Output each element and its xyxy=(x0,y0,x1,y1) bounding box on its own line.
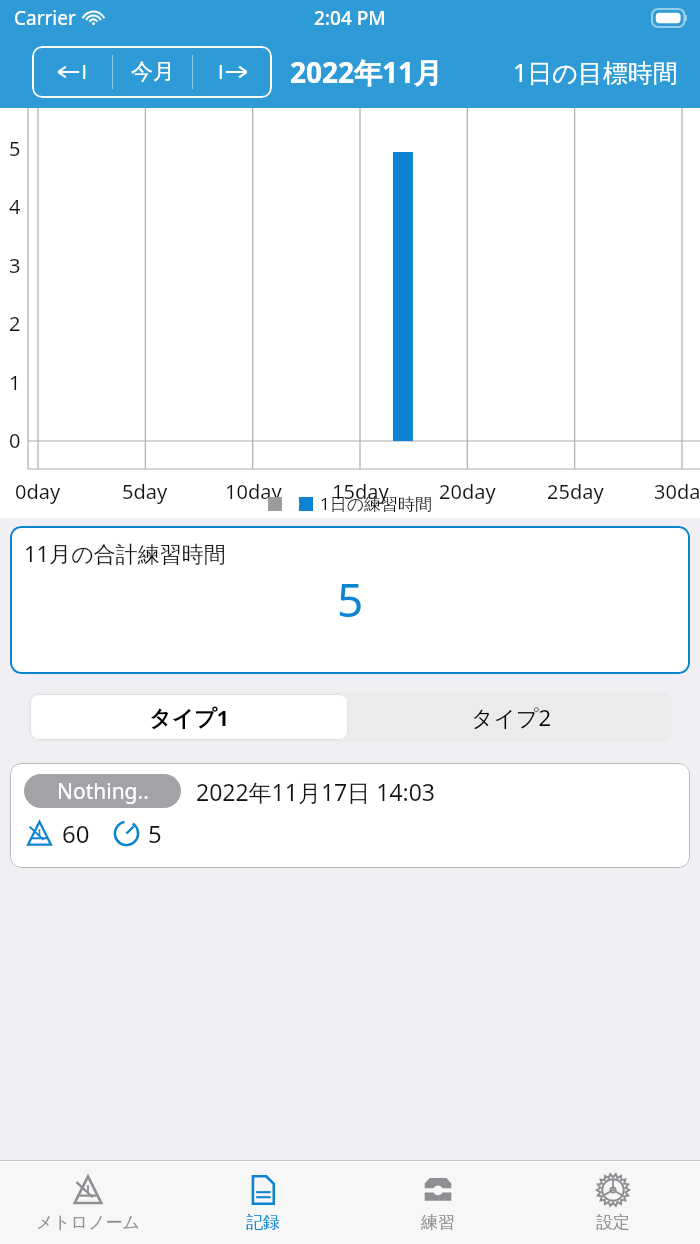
staticText: 0 xyxy=(9,427,21,454)
staticText: 1日の練習時間 xyxy=(320,492,433,515)
staticText: 15day xyxy=(332,478,389,505)
button[interactable]: 今月 xyxy=(113,46,192,98)
staticText: 25day xyxy=(547,478,604,505)
button[interactable]: タイプ1 xyxy=(30,694,348,740)
staticText: タイプ1 xyxy=(149,702,230,732)
staticText: 1 xyxy=(9,369,21,396)
staticText: 0day xyxy=(15,478,61,505)
staticText: 10day xyxy=(225,478,282,505)
staticText: 5 xyxy=(148,817,162,850)
staticText: 5 xyxy=(337,568,364,631)
button[interactable]: 練習 xyxy=(350,1161,525,1244)
staticText: 2022年11月17日 14:03 xyxy=(196,776,436,807)
staticText: Carrier xyxy=(14,5,76,31)
staticText: Nothing.. xyxy=(57,777,149,806)
staticText: 記録 xyxy=(246,1212,280,1233)
button[interactable]: Next month xyxy=(193,46,272,98)
staticText: 30day xyxy=(654,478,700,505)
button[interactable]: 記録 xyxy=(175,1161,350,1244)
button[interactable]: メトロノーム xyxy=(0,1161,175,1244)
staticText: 4 xyxy=(9,193,21,220)
staticText: 5day xyxy=(122,478,168,505)
staticText: 60 xyxy=(62,817,90,850)
button[interactable]: 11月の合計練習時間 xyxy=(10,526,690,674)
staticText: 2 xyxy=(9,310,21,337)
staticText: 11月の合計練習時間 xyxy=(24,538,226,568)
staticText: 20day xyxy=(439,478,496,505)
button[interactable]: 1日の目標時間 xyxy=(507,47,684,97)
staticText: 1日の目標時間 xyxy=(513,55,678,89)
button[interactable]: Nothing.. xyxy=(10,763,690,868)
staticText: タイプ2 xyxy=(471,702,552,732)
staticText: 5 xyxy=(9,135,21,162)
staticText: 練習 xyxy=(421,1212,455,1233)
staticText: メトロノーム xyxy=(36,1212,140,1233)
staticText: 2022年11月 xyxy=(290,53,443,91)
button[interactable]: Previous month xyxy=(32,46,112,98)
staticText: 設定 xyxy=(596,1212,630,1233)
button[interactable]: 設定 xyxy=(525,1161,700,1244)
button[interactable]: Previous month xyxy=(32,46,272,98)
staticText: 2:04 PM xyxy=(314,5,386,31)
staticText: 今月 xyxy=(131,58,175,86)
button[interactable]: タイプ2 xyxy=(350,692,672,742)
staticText: 3 xyxy=(9,252,21,279)
